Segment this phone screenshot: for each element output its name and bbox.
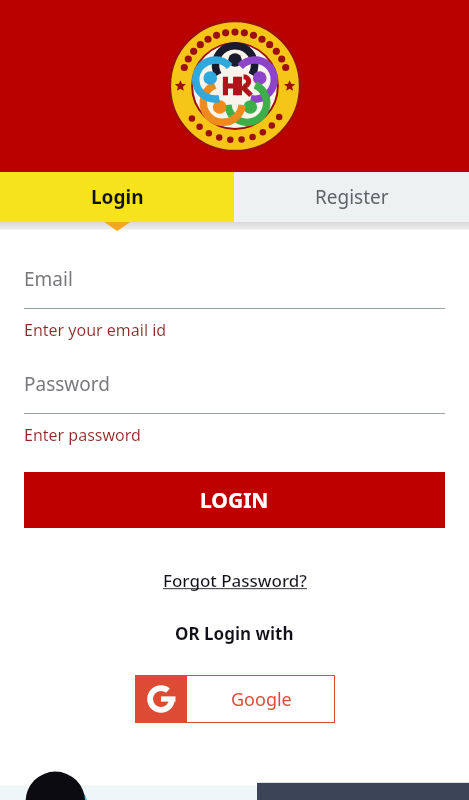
staticText: Register: [315, 184, 389, 210]
staticText: Enter your email id: [24, 319, 167, 341]
button[interactable]: Register: [234, 172, 469, 222]
button[interactable]: Login: [0, 172, 234, 222]
button[interactable]: Google: [135, 675, 335, 723]
staticText: Email: [24, 266, 73, 292]
button[interactable]: Forgot Password?: [155, 565, 315, 596]
staticText: Google: [231, 687, 292, 712]
staticText: Password: [24, 371, 110, 397]
staticText: Forgot Password?: [163, 569, 307, 592]
button[interactable]: LOGIN: [24, 472, 445, 528]
staticText: Login: [91, 184, 144, 210]
staticText: OR Login with: [175, 622, 294, 645]
staticText: LOGIN: [200, 486, 269, 515]
staticText: Enter password: [24, 424, 141, 446]
